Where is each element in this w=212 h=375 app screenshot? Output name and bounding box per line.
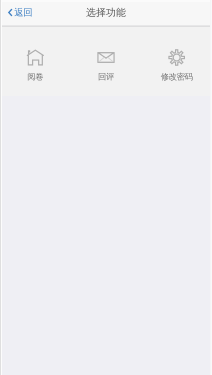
button[interactable]: 阅卷 [0, 27, 71, 96]
button[interactable]: 修改密码 [141, 27, 212, 96]
button[interactable]: 返回 [0, 0, 38, 25]
staticText: 返回 [14, 7, 32, 18]
staticText: 阅卷 [27, 71, 43, 82]
staticText: 修改密码 [161, 71, 193, 82]
button[interactable]: 回评 [71, 27, 141, 96]
staticText: 回评 [98, 71, 114, 82]
staticText: 选择功能 [86, 6, 126, 19]
